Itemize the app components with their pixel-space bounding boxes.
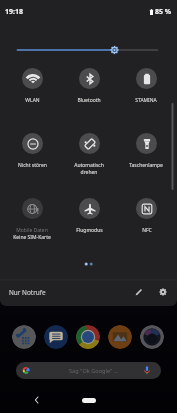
- staticText: Keine SIM-Karte: [13, 234, 51, 241]
- staticText: Flugmodus: [76, 227, 103, 234]
- button[interactable]: Messages: [44, 325, 68, 349]
- staticText: Nicht stören: [18, 162, 47, 169]
- staticText: NFC: [142, 227, 152, 234]
- staticText: 19:18: [5, 7, 23, 17]
- button[interactable]: Home: [80, 394, 98, 406]
- staticText: Bluetooth: [77, 97, 101, 104]
- button[interactable]: WLAN: [4, 68, 60, 120]
- button[interactable]: NFC: [118, 198, 174, 250]
- staticText: Mobile Daten: [16, 227, 48, 234]
- button[interactable]: Edit: [131, 284, 147, 300]
- button[interactable]: Brightness: [0, 0, 177, 64]
- button[interactable]: Nicht stören: [4, 133, 60, 185]
- button[interactable]: Automatisch drehen: [61, 133, 117, 185]
- button[interactable]: Flugmodus: [61, 198, 117, 250]
- staticText: Automatisch drehen: [74, 162, 104, 176]
- staticText: STAMINA: [135, 97, 157, 104]
- button[interactable]: Back: [29, 392, 45, 408]
- button[interactable]: Phone: [12, 325, 36, 349]
- button[interactable]: Camera: [140, 325, 164, 349]
- button[interactable]: Sag "Ok Google" ...: [16, 362, 161, 379]
- staticText: Nur Notrufe: [9, 288, 46, 297]
- staticText: Taschenlampe: [129, 162, 163, 169]
- button[interactable]: Chrome: [76, 325, 100, 349]
- button[interactable]: Mobile Daten: [4, 198, 60, 250]
- button[interactable]: Bluetooth: [61, 68, 117, 120]
- button[interactable]: Settings: [155, 284, 171, 300]
- staticText: 85 %: [155, 7, 172, 17]
- staticText: WLAN: [25, 97, 40, 104]
- button[interactable]: Taschenlampe: [118, 133, 174, 185]
- staticText: Sag "Ok Google" ...: [69, 367, 119, 375]
- button[interactable]: STAMINA: [118, 68, 174, 120]
- button[interactable]: Gallery: [108, 325, 132, 349]
